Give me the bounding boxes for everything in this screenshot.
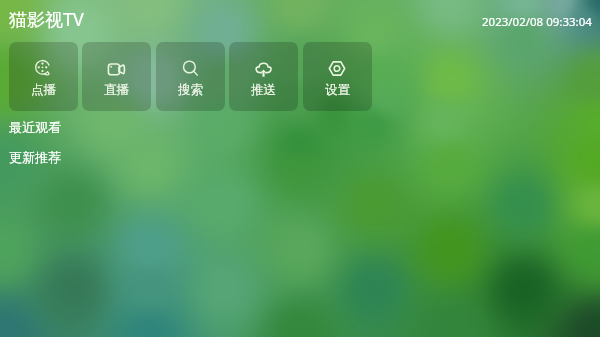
staticText: 直播 bbox=[104, 82, 129, 98]
staticText: 猫影视TV bbox=[9, 7, 84, 32]
button[interactable]: 设置 bbox=[303, 42, 372, 111]
button[interactable]: 更新推荐 bbox=[9, 149, 61, 165]
staticText: 点播 bbox=[31, 82, 56, 98]
other: 搜索 bbox=[182, 60, 199, 77]
button[interactable]: 点播 bbox=[9, 42, 78, 111]
button[interactable]: 推送 bbox=[229, 42, 298, 111]
other: 设置 bbox=[329, 60, 346, 77]
other: 直播 bbox=[108, 60, 125, 77]
staticText: 2023/02/08 09:33:04 bbox=[482, 14, 592, 30]
button[interactable]: 最近观看 bbox=[9, 119, 61, 135]
staticText: 搜索 bbox=[178, 82, 203, 98]
button[interactable]: 搜索 bbox=[156, 42, 225, 111]
button[interactable]: 直播 bbox=[82, 42, 151, 111]
other: 点播 bbox=[35, 60, 52, 77]
staticText: 推送 bbox=[251, 82, 276, 98]
other: 推送 bbox=[255, 60, 272, 77]
staticText: 设置 bbox=[325, 82, 350, 98]
